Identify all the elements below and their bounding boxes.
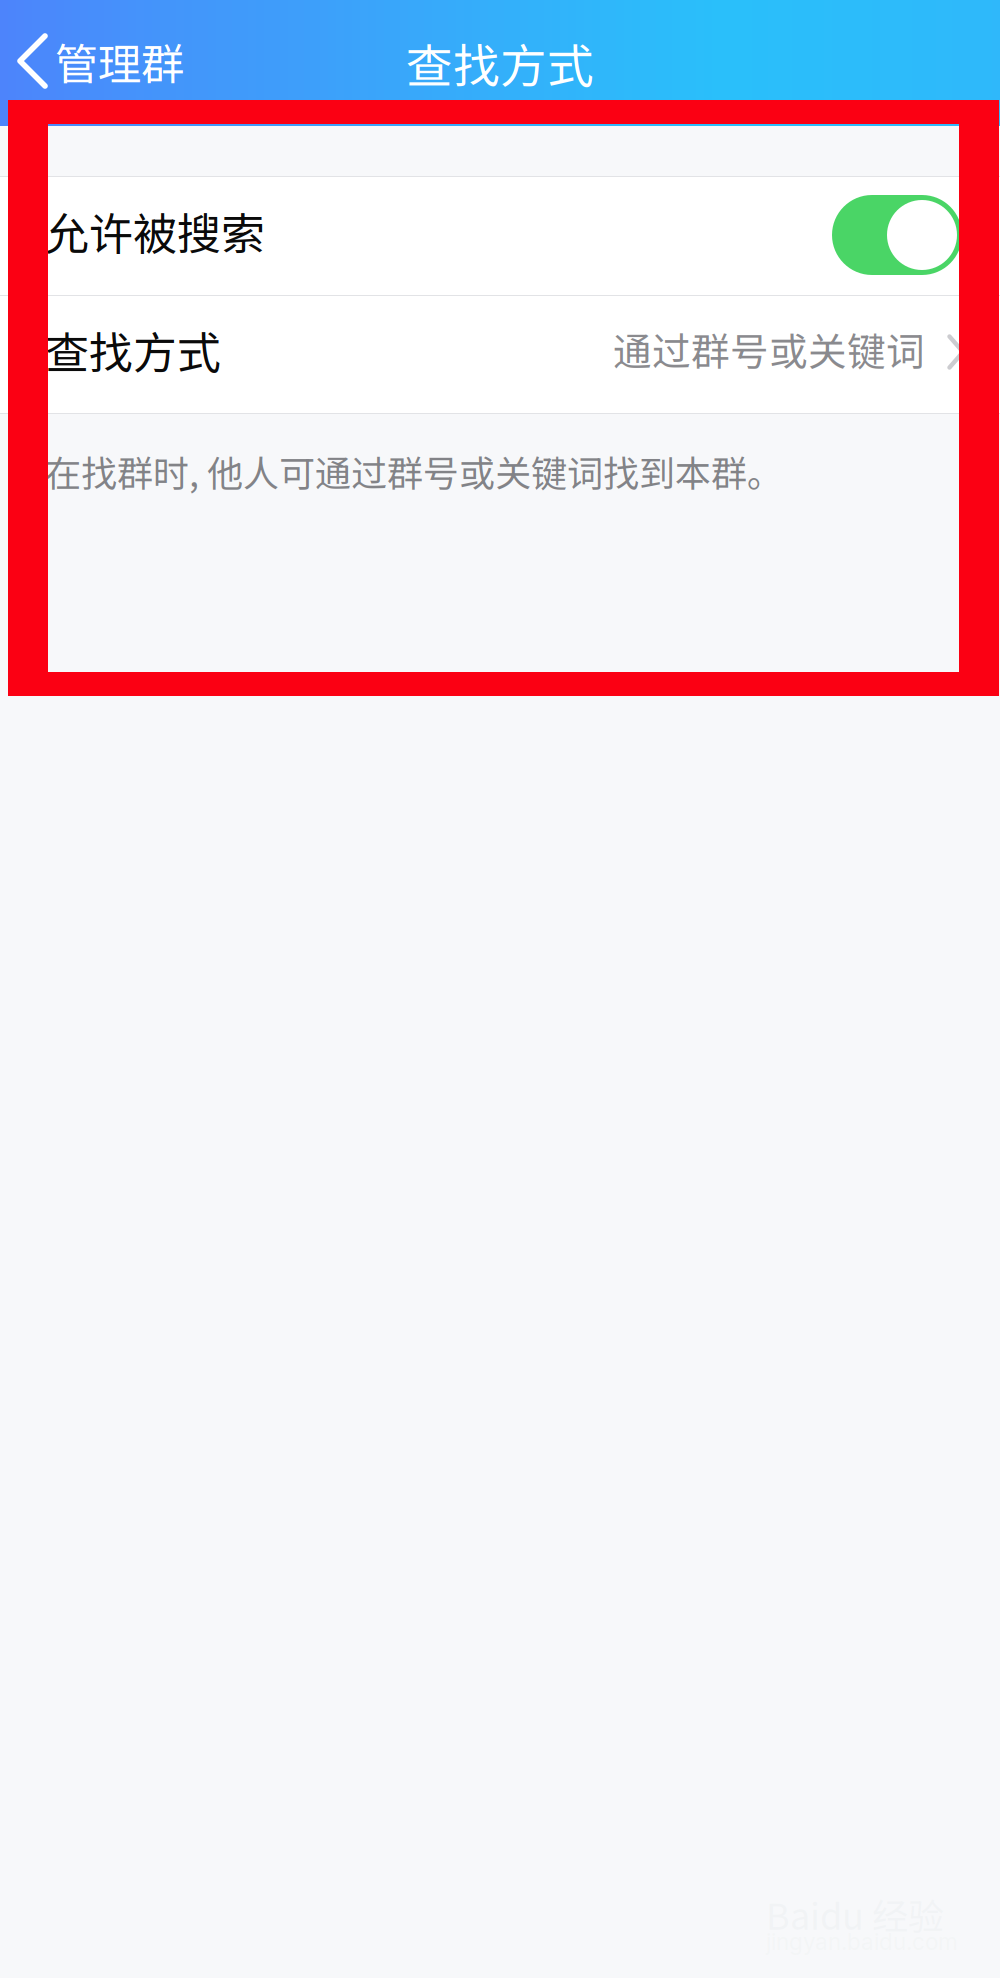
staticText: 在找群时, 他人可通过群号或关键词找到本群。 (45, 445, 783, 497)
button[interactable]: 允许被搜索 (0, 177, 1000, 295)
staticText: 通过群号或关键词 (613, 321, 925, 377)
button[interactable]: 返回管理群 (0, 0, 210, 126)
staticText: 管理群 (55, 30, 184, 93)
staticText: 查找方式 (406, 29, 594, 97)
button[interactable]: 查找方式 (0, 296, 1000, 414)
staticText: 允许被搜索 (45, 199, 265, 262)
staticText: 查找方式 (45, 318, 221, 381)
